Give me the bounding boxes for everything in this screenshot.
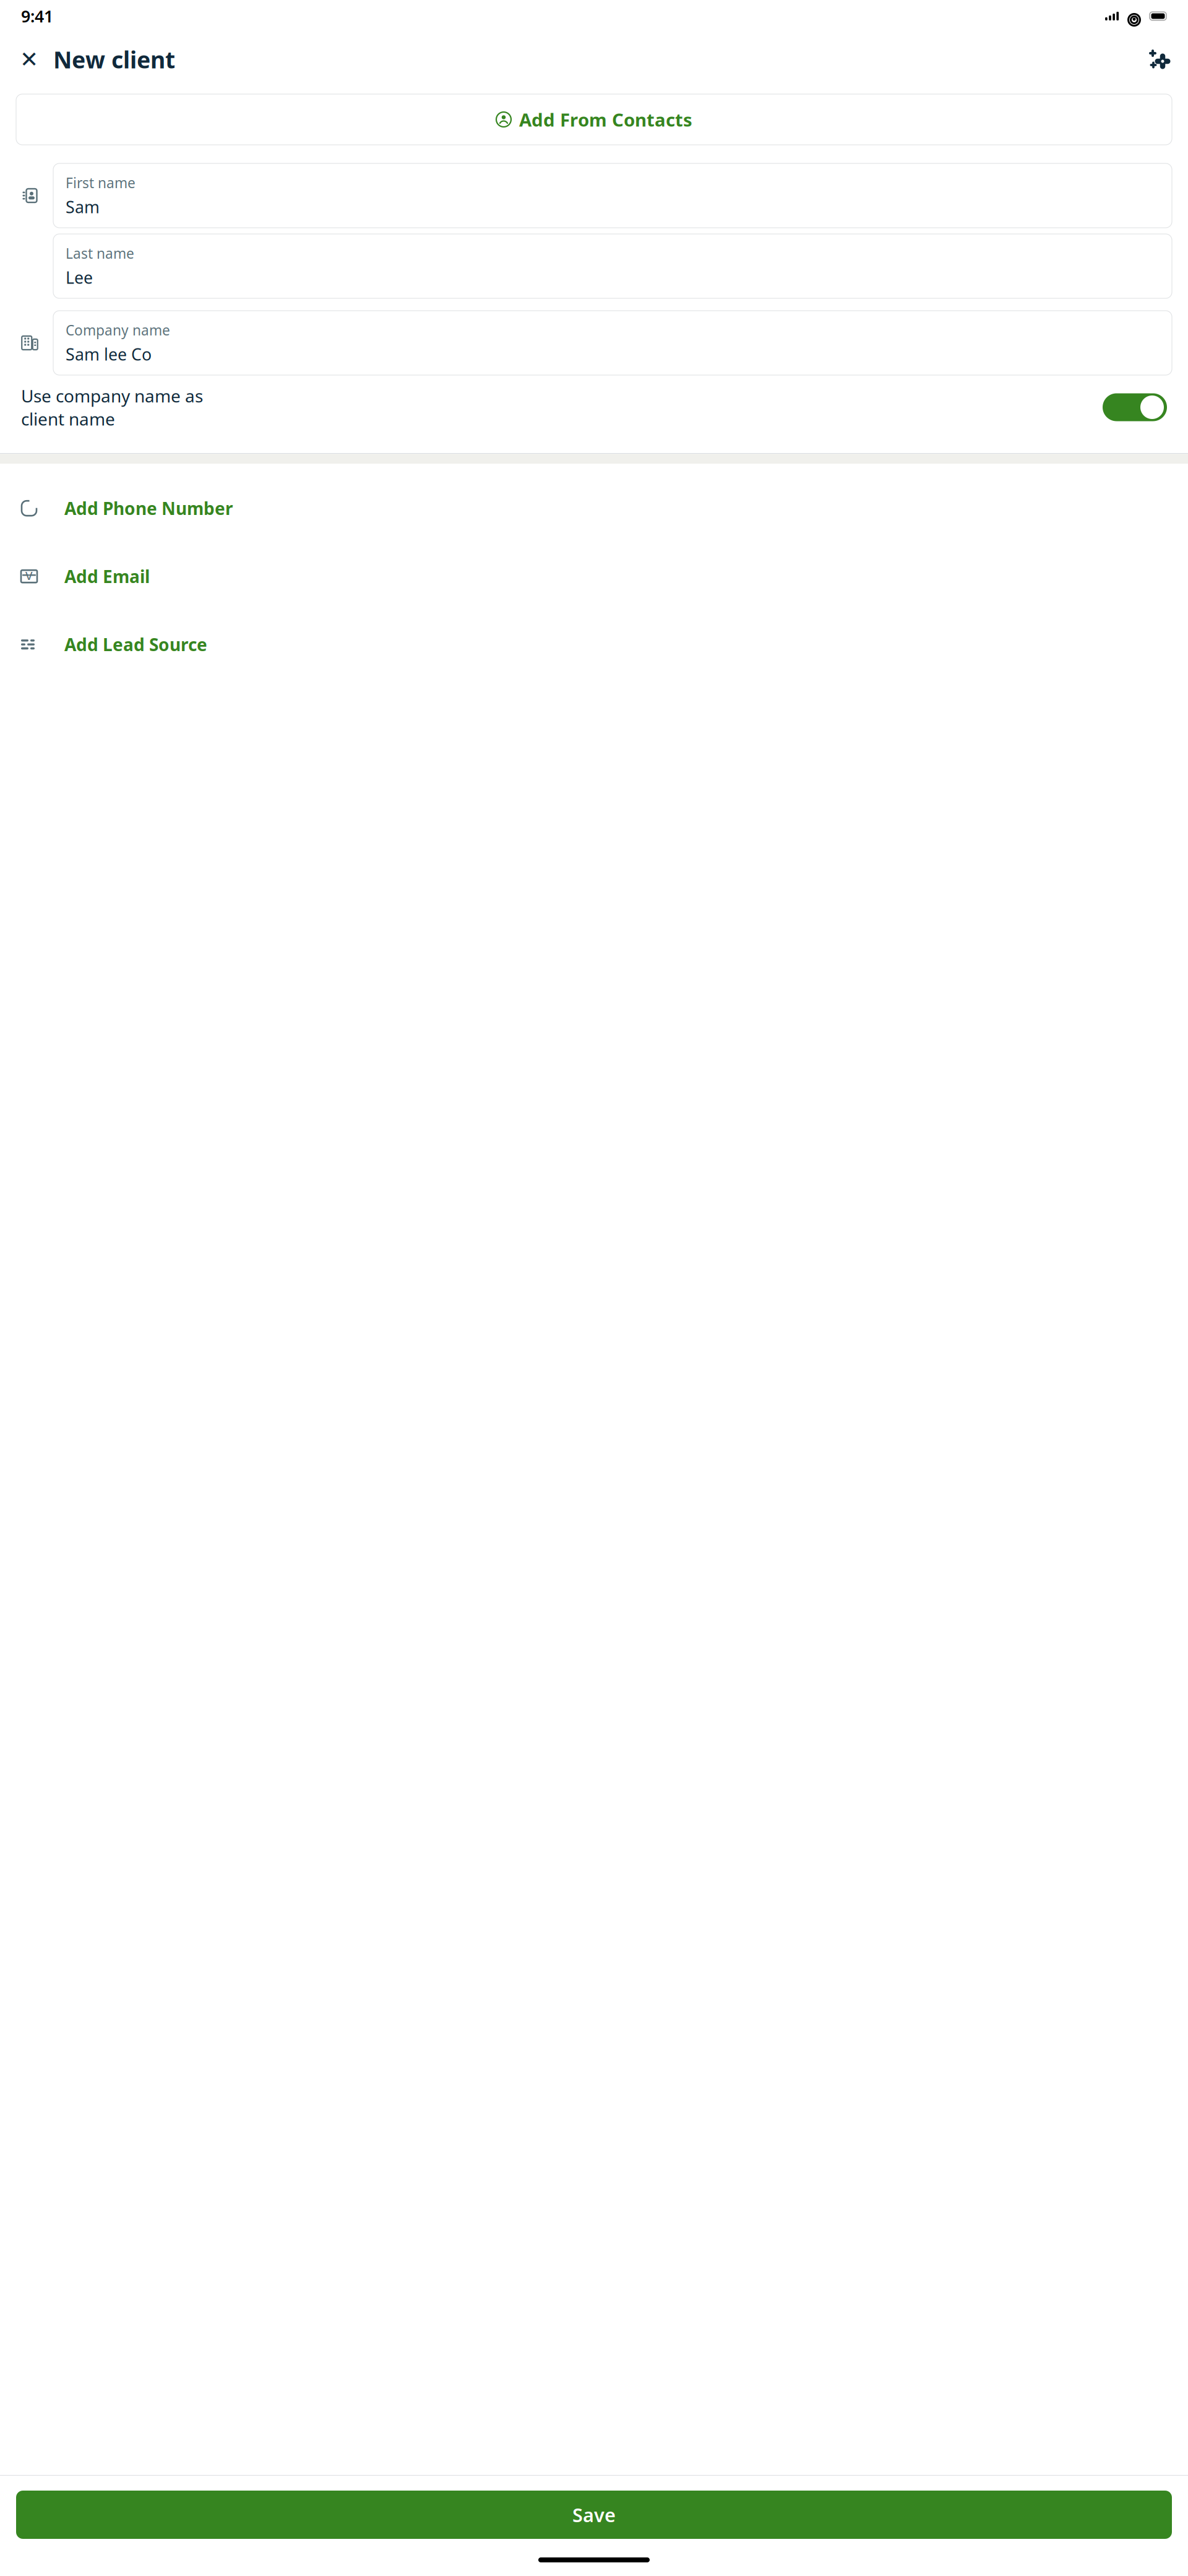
staticText: ✕	[20, 47, 38, 72]
button[interactable]: Close	[16, 44, 42, 75]
staticText: Add From Contacts	[519, 107, 692, 132]
staticText: Last name	[66, 244, 134, 263]
staticText: First name	[66, 173, 136, 192]
button[interactable]: Save	[16, 2491, 1172, 2539]
staticText: New client	[53, 44, 175, 75]
staticText: Add Phone Number	[64, 497, 233, 520]
button[interactable]: Add From Contacts	[16, 94, 1172, 145]
staticText: Save	[572, 2502, 616, 2527]
button[interactable]: AI assist	[1146, 44, 1172, 75]
staticText: 9:41	[21, 5, 53, 27]
button[interactable]: v	[0, 549, 1188, 604]
button[interactable]: Add Lead Source	[0, 617, 1188, 672]
button[interactable]: Add Phone Number	[0, 481, 1188, 536]
staticText: Lee	[66, 266, 93, 288]
staticText: Add Lead Source	[64, 633, 207, 656]
staticText: v	[25, 565, 33, 584]
staticText: Company name	[66, 321, 170, 339]
staticText: Add Email	[64, 565, 150, 588]
staticText: Use company name as client name	[21, 384, 203, 430]
staticText: Sam lee Co	[66, 343, 152, 365]
staticText: Sam	[66, 196, 100, 218]
button[interactable]: Use company name as client name	[0, 384, 1188, 431]
